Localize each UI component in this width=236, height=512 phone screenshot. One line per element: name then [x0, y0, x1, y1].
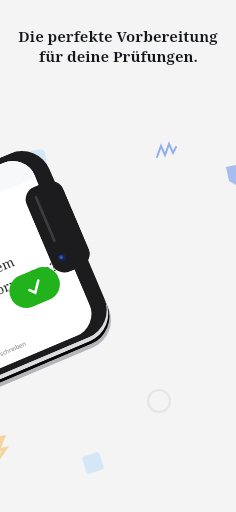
staticText: für deine Prüfungen. [39, 46, 198, 66]
button[interactable]: Notiz schreiben [0, 340, 27, 368]
staticText: Die perfekte Vorbereitung [18, 26, 218, 46]
staticText: …ranz besagt, dass alle …chen Sachverhal… [0, 194, 74, 347]
button[interactable]: Antwort bestätigen [4, 262, 65, 313]
staticText: Notiz schreiben [0, 340, 27, 364]
